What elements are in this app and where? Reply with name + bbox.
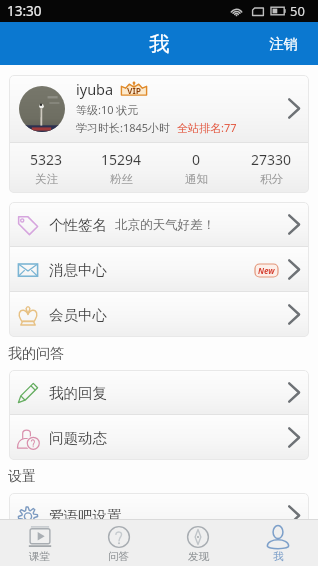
staticText: iyuba [76,79,114,99]
button[interactable]: 我 [238,520,318,566]
staticText: 学习时长:1845小时 [76,120,171,135]
button[interactable]: 0 [159,143,234,193]
staticText: 13:30 [7,2,42,20]
staticText: 问答 [108,550,129,563]
staticText: 等级:10 状元 [76,102,139,117]
staticText: 消息中心 [49,261,107,279]
staticText: 关注 [35,172,58,186]
staticText: 50 [290,2,305,20]
staticText: VIP [127,85,142,97]
staticText: 爱语吧设置 [49,507,122,519]
button[interactable]: 发现 [158,520,238,566]
staticText: 我的回复 [49,384,107,402]
staticText: 设置 [8,468,36,486]
staticText: 课堂 [29,550,50,563]
staticText: 0 [192,150,201,169]
staticText: 我的问答 [8,345,64,363]
staticText: New [258,265,275,276]
staticText: 5323 [30,150,63,169]
staticText: 15294 [101,150,142,169]
button[interactable]: 个性签名 [9,202,309,247]
staticText: 我 [273,550,284,563]
button[interactable]: 会员中心 [9,292,309,337]
button[interactable]: 消息中心 [9,247,309,292]
button[interactable]: 爱语吧设置 [9,493,309,519]
button[interactable]: 问题动态 [9,415,309,460]
staticText: 个性签名 [49,216,107,234]
button[interactable]: 5323 [9,143,84,193]
staticText: 全站排名:77 [177,120,237,135]
button[interactable]: 我的回复 [9,370,309,415]
button[interactable]: 15294 [84,143,159,193]
staticText: 北京的天气好差！ [115,217,215,233]
staticText: 会员中心 [49,306,107,324]
button[interactable]: 问答 [79,520,158,566]
button[interactable]: 注销 [255,22,318,65]
staticText: 积分 [260,172,283,186]
button[interactable]: iyuba [9,75,309,142]
staticText: 注销 [269,35,298,53]
staticText: 通知 [185,172,208,186]
staticText: 发现 [188,550,209,563]
staticText: 27330 [251,150,292,169]
staticText: 问题动态 [49,429,107,447]
button[interactable]: 27330 [234,143,309,193]
staticText: 我 [149,31,170,57]
staticText: 粉丝 [110,172,133,186]
button[interactable]: 课堂 [0,520,79,566]
